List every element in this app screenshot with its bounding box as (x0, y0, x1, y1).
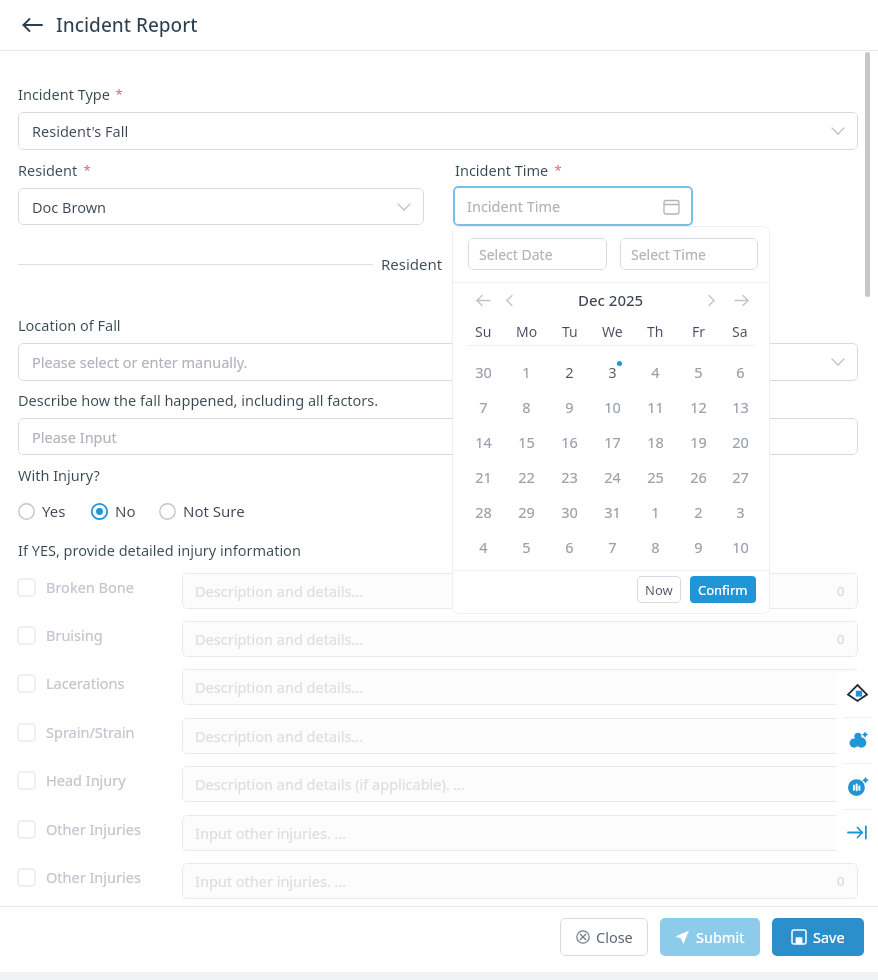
staticText: 2 (694, 502, 703, 522)
button[interactable]: No (91, 498, 136, 524)
button[interactable]: 7 (591, 529, 634, 564)
button[interactable]: Description and details... (182, 573, 858, 609)
button[interactable]: Other Injuries (18, 817, 141, 841)
button[interactable]: 29 (505, 494, 548, 529)
staticText: 21 (475, 467, 492, 487)
button[interactable]: 5 (505, 529, 548, 564)
button[interactable]: Description and details... (182, 718, 858, 754)
staticText: * (112, 85, 123, 103)
button[interactable]: 15 (505, 424, 548, 459)
button[interactable]: Back (16, 9, 48, 41)
button[interactable]: 18 (634, 424, 677, 459)
button[interactable]: 12 (677, 389, 720, 424)
button[interactable]: 2 (677, 494, 720, 529)
staticText: Description and details... (195, 726, 364, 746)
button[interactable]: Voice (836, 764, 878, 809)
staticText: 13 (732, 397, 749, 417)
button[interactable]: 19 (677, 424, 720, 459)
button[interactable]: 14 (462, 424, 505, 459)
button[interactable]: Not Sure (159, 498, 245, 524)
button[interactable]: 4 (462, 529, 505, 564)
staticText: Doc Brown (32, 197, 107, 217)
button[interactable]: 8 (634, 529, 677, 564)
button[interactable]: 30 (548, 494, 591, 529)
button[interactable]: 31 (591, 494, 634, 529)
button[interactable]: 4 (634, 354, 677, 389)
button[interactable]: 24 (591, 459, 634, 494)
button[interactable]: 3 (591, 354, 634, 389)
button[interactable]: 6 (548, 529, 591, 564)
button[interactable]: 10 (591, 389, 634, 424)
button[interactable]: Description and details... (182, 621, 858, 657)
button[interactable]: Collapse (836, 810, 878, 855)
button[interactable]: Input other injuries. ... (182, 815, 858, 851)
button[interactable]: 5 (677, 354, 720, 389)
staticText: * (80, 161, 91, 179)
button[interactable]: 22 (505, 459, 548, 494)
staticText: 6 (565, 537, 574, 557)
button[interactable]: 11 (634, 389, 677, 424)
button[interactable]: 9 (677, 529, 720, 564)
button[interactable]: Description and details (if applicable).… (182, 766, 858, 802)
button[interactable]: Now (637, 576, 681, 603)
button[interactable]: Incident Time (453, 186, 693, 226)
button[interactable]: Confirm (690, 576, 756, 603)
button[interactable]: Head Injury (18, 768, 126, 792)
button[interactable]: 10 (720, 529, 760, 564)
button[interactable]: 9 (548, 389, 591, 424)
button[interactable]: Resident's Fall (18, 112, 858, 150)
button[interactable]: Next year (734, 284, 770, 316)
button[interactable]: 17 (591, 424, 634, 459)
button[interactable]: Doc Brown (18, 188, 424, 225)
button[interactable]: Scan (836, 672, 878, 717)
button[interactable]: 7 (462, 389, 505, 424)
staticText: 0 (837, 582, 845, 600)
button[interactable]: 3 (720, 494, 760, 529)
staticText: 25 (647, 467, 664, 487)
button[interactable]: Lacerations (18, 671, 125, 695)
staticText: 4 (651, 362, 660, 382)
staticText: 28 (475, 502, 492, 522)
button[interactable]: Assist (836, 718, 878, 763)
button[interactable]: 2 (548, 354, 591, 389)
button[interactable]: 20 (720, 424, 760, 459)
button[interactable]: Save (772, 918, 864, 956)
staticText: Other Injuries (46, 819, 141, 839)
button[interactable]: 1 (505, 354, 548, 389)
button[interactable]: 16 (548, 424, 591, 459)
button[interactable]: 26 (677, 459, 720, 494)
button[interactable]: Yes (18, 498, 66, 524)
button[interactable]: 30 (462, 354, 505, 389)
button[interactable]: Next month (704, 284, 770, 316)
staticText: Incident Type (18, 84, 110, 104)
button[interactable]: Submit (660, 918, 760, 956)
button[interactable]: Previous year (476, 284, 770, 316)
staticText: 20 (732, 432, 749, 452)
button[interactable]: 8 (505, 389, 548, 424)
staticText: Sprain/Strain (46, 722, 135, 742)
button[interactable]: Broken Bone (18, 575, 134, 599)
button[interactable]: 13 (720, 389, 760, 424)
button[interactable]: Bruising (18, 623, 103, 647)
button[interactable]: 27 (720, 459, 760, 494)
staticText: 8 (651, 537, 660, 557)
button[interactable]: Select Date (468, 238, 607, 270)
button[interactable]: Previous month (506, 284, 770, 316)
button[interactable]: 6 (720, 354, 760, 389)
button[interactable]: 23 (548, 459, 591, 494)
button[interactable]: Please Input (18, 418, 858, 455)
button[interactable]: 25 (634, 459, 677, 494)
staticText: Select Time (631, 245, 706, 264)
button[interactable]: Select Time (620, 238, 758, 270)
button[interactable]: Description and details... (182, 669, 858, 705)
button[interactable]: 21 (462, 459, 505, 494)
button[interactable]: Input other injuries. ... (182, 863, 858, 899)
button[interactable]: Please select or enter manually. (18, 343, 858, 381)
button[interactable]: Sprain/Strain (18, 720, 135, 744)
button[interactable]: 28 (462, 494, 505, 529)
button[interactable]: 1 (634, 494, 677, 529)
button[interactable]: Other Injuries (18, 865, 141, 889)
button[interactable]: Close (560, 918, 648, 956)
